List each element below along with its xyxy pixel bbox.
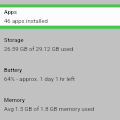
- staticText: Battery: [4, 67, 23, 74]
- button[interactable]: Apps: [0, 9, 120, 23]
- button[interactable]: Battery: [0, 67, 120, 81]
- staticText: 26.59 GB of 29.12 GB used: [4, 46, 74, 53]
- staticText: 46 apps installed: [4, 18, 48, 25]
- staticText: Avg 1.5 GB of 1.8 GB memory used: [4, 106, 95, 113]
- staticText: 64% - approx. 1 day 1 hr left: [4, 76, 75, 83]
- staticText: Storage: [4, 37, 24, 44]
- button[interactable]: Memory: [0, 97, 120, 111]
- button[interactable]: Storage: [0, 37, 120, 51]
- staticText: Memory: [4, 97, 25, 104]
- staticText: Apps: [4, 9, 17, 16]
